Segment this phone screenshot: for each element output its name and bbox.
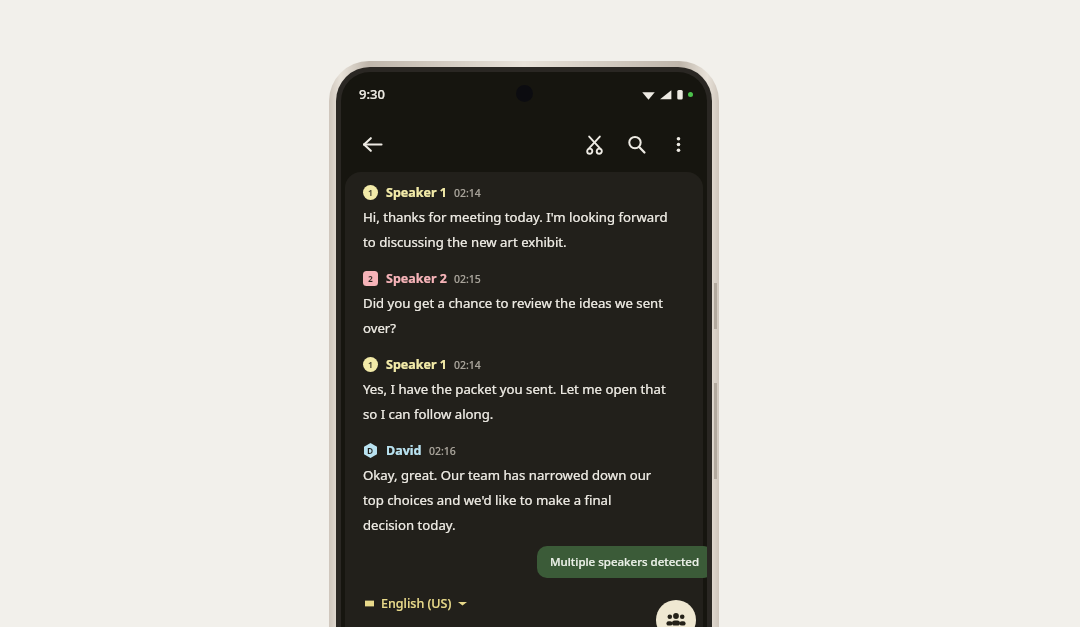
staticText: 1 <box>368 187 373 199</box>
button[interactable]: Back <box>351 123 393 165</box>
button[interactable]: More options <box>657 123 699 165</box>
staticText: 02:16 <box>429 444 456 458</box>
staticText: Okay, great. Our team has narrowed down … <box>363 466 652 484</box>
staticText: 9:30 <box>359 85 385 103</box>
staticText: 2 <box>368 273 373 285</box>
staticText: 02:14 <box>454 186 481 200</box>
button[interactable]: Multiple speakers <box>656 600 696 627</box>
staticText: Multiple speakers detected <box>550 554 700 570</box>
staticText: Yes, I have the packet you sent. Let me … <box>363 380 666 398</box>
staticText: English (US) <box>381 595 452 612</box>
staticText: 1 <box>368 359 373 371</box>
staticText: Speaker 1 <box>386 356 447 373</box>
staticText: so I can follow along. <box>363 405 494 423</box>
staticText: over? <box>363 319 397 337</box>
staticText: 02:14 <box>454 358 481 372</box>
staticText: D <box>367 445 374 457</box>
button[interactable]: English (US) <box>361 592 471 615</box>
staticText: Speaker 1 <box>386 184 447 201</box>
button[interactable]: Search <box>615 123 657 165</box>
staticText: top choices and we'd like to make a fina… <box>363 491 612 509</box>
staticText: Speaker 2 <box>386 270 447 287</box>
staticText: Hi, thanks for meeting today. I'm lookin… <box>363 208 668 226</box>
staticText: to discussing the new art exhibit. <box>363 233 567 251</box>
button[interactable]: Trim <box>573 123 615 165</box>
staticText: David <box>386 442 422 459</box>
staticText: 02:15 <box>454 272 481 286</box>
staticText: Did you get a chance to review the ideas… <box>363 294 663 312</box>
staticText: decision today. <box>363 516 456 534</box>
